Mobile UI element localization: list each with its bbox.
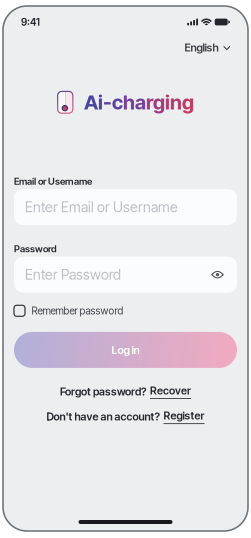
staticText: 9:41 (21, 16, 40, 28)
staticText: Ai (84, 90, 103, 114)
staticText: Don't have an account? (46, 410, 159, 423)
staticText: Remember password (31, 305, 123, 317)
button[interactable]: Remember password (14, 305, 123, 317)
staticText: Enter Password (25, 266, 121, 283)
staticText: Register (163, 409, 204, 422)
staticText: in (165, 90, 182, 114)
button[interactable]: Register (163, 409, 204, 424)
button[interactable]: English (185, 41, 230, 54)
staticText: rg (146, 90, 165, 114)
staticText: English (185, 41, 219, 54)
staticText: Log in (111, 343, 139, 356)
staticText: Forgot password? (60, 385, 146, 398)
staticText: ha (123, 90, 146, 114)
button[interactable]: Enter Email or Username (14, 189, 237, 225)
button[interactable]: Log in (14, 332, 237, 368)
staticText: -c (103, 90, 123, 114)
staticText: g (182, 90, 194, 114)
staticText: Recover (150, 384, 191, 397)
button[interactable]: Recover (150, 384, 191, 399)
staticText: Enter Email or Username (25, 198, 178, 216)
button[interactable]: Enter Password (14, 257, 237, 293)
staticText: Password (14, 243, 57, 255)
staticText: Email or Username (14, 175, 92, 187)
